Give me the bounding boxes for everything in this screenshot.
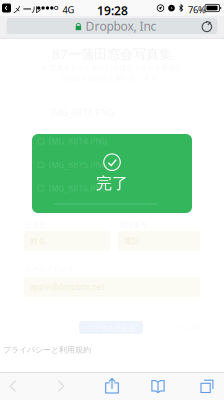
staticText: メール (12, 4, 41, 15)
staticText: 4G (62, 3, 74, 16)
button[interactable]: Tabs (185, 373, 224, 400)
staticText: 76% (188, 3, 206, 16)
button[interactable]: Share (90, 372, 134, 399)
button[interactable]: プライバシーと利用規約 (0, 342, 94, 358)
staticText: 電話 (124, 236, 140, 246)
staticText: IMG_8814.PNG (48, 136, 107, 147)
button[interactable]: Back (0, 373, 35, 400)
staticText: Dropbox, Inc (85, 18, 156, 34)
staticText: 完了 (96, 174, 128, 193)
staticText: IMG_8816.PNG (48, 183, 107, 194)
staticText: 姓名 (30, 236, 46, 246)
button[interactable]: Bookmarks (136, 373, 180, 400)
staticText: 87ー蒲田窓会写真集 (52, 45, 172, 63)
staticText: プライバシーと利用規約 (3, 345, 91, 355)
staticText: IMG_8815.PNG (48, 159, 107, 170)
staticText: apple@dropbox.net (30, 282, 105, 292)
staticText: 19:28 (97, 3, 128, 18)
button[interactable]: Reload (196, 16, 218, 38)
